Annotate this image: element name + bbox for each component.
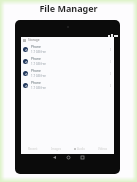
button[interactable]: Videos	[91, 144, 114, 153]
staticText: 1.7 GB free	[31, 74, 46, 78]
staticText: Images	[51, 147, 62, 151]
staticText: Videos	[98, 147, 108, 151]
button[interactable]: Recent	[21, 144, 45, 153]
button[interactable]: Audio	[68, 144, 91, 153]
staticText: 1.7 GB free	[31, 62, 46, 66]
button[interactable]: Back	[50, 153, 58, 161]
button[interactable]: Images	[45, 144, 68, 153]
staticText: Phone	[31, 44, 41, 48]
button[interactable]: More options	[108, 71, 112, 75]
button[interactable]: Storage	[21, 37, 114, 43]
staticText: Recent	[28, 147, 38, 151]
staticText: Audio	[77, 147, 85, 151]
staticText: Storage	[28, 38, 40, 42]
staticText: 1.7 GB free	[31, 50, 46, 54]
button[interactable]: Phone	[21, 79, 114, 91]
staticText: Phone	[31, 68, 41, 72]
staticText: 1.7 GB free	[31, 86, 46, 90]
staticText: Phone	[31, 80, 41, 84]
staticText: Phone	[31, 56, 41, 60]
button[interactable]: Home	[64, 153, 72, 161]
staticText: File Manager	[39, 2, 98, 14]
button[interactable]: Phone	[21, 43, 114, 55]
button[interactable]: Phone	[21, 67, 114, 79]
button[interactable]: Phone	[21, 55, 114, 67]
button[interactable]: More options	[108, 83, 112, 87]
button[interactable]: More options	[108, 47, 112, 51]
button[interactable]: Recents	[78, 153, 86, 161]
button[interactable]: More options	[108, 59, 112, 63]
